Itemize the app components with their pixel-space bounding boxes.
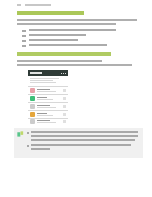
button[interactable]: Screenshot of messages app	[28, 70, 68, 124]
button[interactable]: Note	[14, 128, 143, 158]
other: Note	[17, 131, 24, 138]
